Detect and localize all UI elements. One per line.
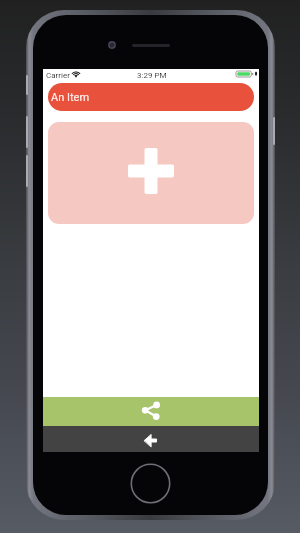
- button[interactable]: Share: [43, 397, 259, 426]
- staticText: An Item: [51, 91, 90, 104]
- button[interactable]: An Item: [48, 83, 254, 111]
- button[interactable]: Back: [43, 426, 259, 452]
- staticText: Carrier: [46, 71, 70, 80]
- staticText: 3:29 PM: [137, 71, 167, 80]
- button[interactable]: Add item: [48, 122, 254, 224]
